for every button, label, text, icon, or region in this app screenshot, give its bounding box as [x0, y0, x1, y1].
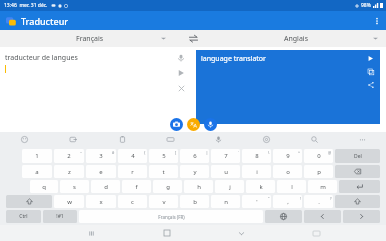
button[interactable]: Settings — [242, 132, 290, 147]
button[interactable]: i — [242, 165, 271, 178]
button[interactable] — [335, 195, 380, 208]
button[interactable]: n — [211, 195, 240, 208]
staticText: m — [320, 183, 326, 191]
staticText: ? — [330, 196, 332, 201]
button[interactable]: More options — [368, 12, 386, 30]
button[interactable]: Listen — [365, 53, 376, 64]
staticText: ` — [238, 150, 239, 155]
button[interactable]: Stickers — [49, 132, 98, 147]
staticText: Traducteur — [21, 15, 69, 27]
button[interactable]: 5 — [149, 149, 178, 163]
button[interactable]: Camera input — [170, 118, 183, 131]
button[interactable]: 6 — [180, 149, 209, 163]
button[interactable]: Recents — [54, 225, 129, 241]
staticText: 8 — [255, 152, 259, 160]
button[interactable]: l — [277, 180, 306, 193]
staticText: { — [144, 150, 146, 155]
button[interactable]: Clipboard — [98, 132, 146, 147]
button[interactable]: Home — [129, 225, 204, 241]
staticText: w — [67, 198, 72, 206]
staticText: !#1 — [56, 213, 64, 220]
button[interactable] — [339, 180, 380, 193]
button[interactable]: language translator — [196, 50, 380, 124]
button[interactable]: Hide keyboard — [204, 225, 279, 241]
staticText: # — [112, 150, 115, 155]
button[interactable]: 9 — [273, 149, 302, 163]
button[interactable]: 1 — [22, 149, 52, 163]
button[interactable]: r — [118, 165, 147, 178]
button[interactable]: a — [22, 165, 52, 178]
button[interactable]: !#1 — [43, 210, 77, 223]
button[interactable]: Translate — [187, 118, 200, 131]
button[interactable]: 0 — [304, 149, 333, 163]
button[interactable]: u — [211, 165, 240, 178]
button[interactable]: Copy — [365, 66, 376, 77]
button[interactable]: p — [304, 165, 333, 178]
button[interactable]: Share — [365, 79, 376, 90]
button[interactable]: y — [180, 165, 209, 178]
staticText: s — [73, 183, 76, 191]
staticText: a — [35, 168, 39, 176]
button[interactable]: Search — [290, 132, 338, 147]
button[interactable] — [335, 165, 380, 178]
button[interactable]: Microphone — [204, 118, 217, 131]
staticText: \ — [268, 150, 270, 155]
button[interactable]: 3 — [86, 149, 116, 163]
button[interactable]: z — [54, 165, 84, 178]
button[interactable]: t — [149, 165, 178, 178]
button[interactable] — [343, 210, 380, 223]
button[interactable]: Voice typing — [194, 132, 242, 147]
button[interactable]: Keyboard switcher — [279, 225, 354, 241]
button[interactable] — [304, 210, 341, 223]
button[interactable]: f — [122, 180, 151, 193]
button[interactable]: c — [118, 195, 147, 208]
staticText: g — [166, 183, 170, 191]
button[interactable]: e — [86, 165, 116, 178]
button[interactable]: j — [215, 180, 244, 193]
staticText: d — [104, 183, 108, 191]
button[interactable]: 4 — [118, 149, 147, 163]
button[interactable]: Anglais — [206, 30, 386, 47]
button[interactable]: Keyboard layout — [146, 132, 194, 147]
staticText: e — [99, 168, 103, 176]
staticText: 4 — [131, 152, 135, 160]
button[interactable]: Ctrl — [6, 210, 41, 223]
staticText: q — [42, 183, 46, 191]
button[interactable]: k — [246, 180, 275, 193]
button[interactable]: Listen — [175, 67, 187, 79]
button[interactable]: 2 — [54, 149, 84, 163]
button[interactable]: w — [54, 195, 84, 208]
button[interactable]: Del — [335, 149, 380, 163]
button[interactable]: More — [338, 132, 386, 147]
button[interactable]: x — [86, 195, 116, 208]
button[interactable] — [265, 210, 302, 223]
button[interactable]: 8 — [242, 149, 271, 163]
button[interactable] — [6, 195, 52, 208]
button[interactable]: g — [153, 180, 182, 193]
button[interactable]: Clear — [175, 82, 187, 94]
button[interactable]: ' — [242, 195, 271, 208]
button[interactable]: Emoji — [0, 132, 49, 147]
button[interactable]: Français (FR) — [79, 210, 263, 223]
button[interactable]: h — [184, 180, 213, 193]
button[interactable]: . — [304, 195, 333, 208]
staticText: k — [259, 183, 263, 191]
staticText: ~ — [80, 150, 83, 155]
button[interactable]: 7 — [211, 149, 240, 163]
button[interactable]: o — [273, 165, 302, 178]
button[interactable]: Swap languages — [180, 30, 206, 47]
button[interactable]: q — [30, 180, 58, 193]
button[interactable]: d — [91, 180, 120, 193]
button[interactable]: , — [273, 195, 302, 208]
staticText: 7 — [224, 152, 228, 160]
staticText: h — [197, 183, 201, 191]
button[interactable]: Français — [0, 30, 180, 47]
button[interactable]: Voice input — [175, 52, 187, 64]
button[interactable]: m — [308, 180, 337, 193]
staticText: Anglais — [284, 34, 308, 44]
staticText: ! — [300, 196, 301, 201]
button[interactable]: v — [149, 195, 178, 208]
button[interactable]: Traducteur — [0, 11, 386, 30]
button[interactable]: s — [60, 180, 89, 193]
button[interactable]: b — [180, 195, 209, 208]
